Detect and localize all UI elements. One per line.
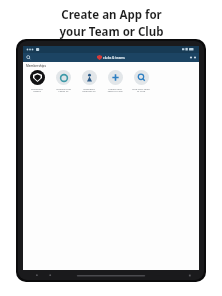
- staticText: Blackburn Hawks: [31, 87, 43, 93]
- staticText: Create your Team or Club: [107, 87, 123, 93]
- staticText: your Team or Club: [59, 24, 164, 40]
- staticText: Memberships: [26, 64, 46, 68]
- button[interactable]: Training Hub Leeds FC: [52, 70, 74, 93]
- button[interactable]: Search: [25, 54, 32, 61]
- staticText: Create an App for: [61, 7, 162, 23]
- staticText: Training Hub Leeds FC: [56, 87, 71, 93]
- button[interactable]: Find your Team or Club: [130, 70, 152, 93]
- staticText: Find your Team or Club: [132, 87, 150, 93]
- staticText: clubs & teams: [103, 56, 125, 60]
- button[interactable]: Blackburn Hawks: [26, 70, 48, 93]
- button[interactable]: Create your Team or Club: [104, 70, 126, 93]
- button[interactable]: Wakefield Saracens FC: [78, 70, 100, 93]
- staticText: Wakefield Saracens FC: [82, 87, 96, 93]
